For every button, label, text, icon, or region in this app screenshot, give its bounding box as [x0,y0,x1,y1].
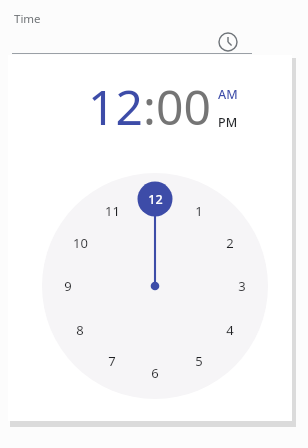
staticText: 8 [76,321,84,339]
button[interactable]: 12 [88,74,143,139]
button[interactable]: 00 [156,74,211,139]
staticText: 4 [226,321,234,339]
button[interactable]: 1 [185,197,213,225]
button[interactable]: 9 [54,272,82,300]
staticText: 00 [156,74,211,139]
staticText: 9 [64,277,72,295]
button[interactable]: 5 [185,347,213,375]
button[interactable]: 10 [66,229,94,257]
staticText: 6 [151,364,159,382]
button[interactable]: 12 [141,185,169,213]
staticText: AM [218,86,238,103]
button[interactable]: Switch to clock mode [217,31,238,52]
staticText: 3 [238,277,246,295]
staticText: 12 [148,191,163,208]
button[interactable]: PM [218,114,238,131]
staticText: : [143,74,156,139]
staticText: PM [218,114,238,131]
staticText: Time [14,11,41,27]
button[interactable]: 11 [98,197,126,225]
staticText: 11 [105,202,120,220]
staticText: 5 [195,352,203,370]
staticText: 10 [73,234,88,252]
staticText: 2 [226,234,234,252]
button[interactable]: 8 [66,316,94,344]
button[interactable]: 6 [141,359,169,387]
staticText: 1 [195,202,203,220]
staticText: 7 [108,352,116,370]
button[interactable]: 2 [216,229,244,257]
button[interactable]: 4 [216,316,244,344]
button[interactable]: 7 [98,347,126,375]
button[interactable]: 3 [228,272,256,300]
staticText: 12 [88,74,143,139]
button[interactable]: AM [218,86,238,103]
